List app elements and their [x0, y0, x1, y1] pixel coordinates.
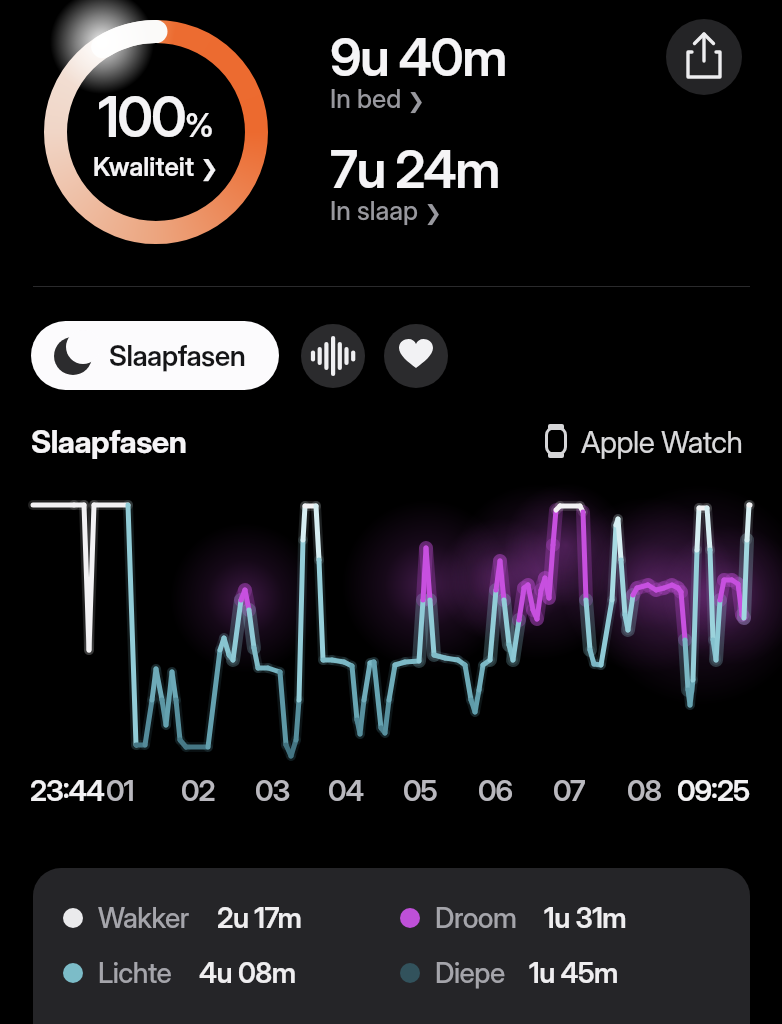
staticText: 05	[403, 773, 437, 808]
staticText: 1u 45m	[529, 956, 618, 990]
staticText: 1u 31m	[544, 901, 627, 935]
staticText: Droom	[435, 901, 517, 935]
staticText: In slaap ❯	[330, 195, 442, 226]
staticText: 04	[328, 773, 364, 808]
staticText: 03	[255, 773, 290, 808]
staticText: Lichte	[98, 956, 172, 990]
staticText: 01	[106, 773, 134, 808]
staticText: In bed ❯	[330, 83, 425, 114]
staticText: 23:44	[30, 773, 104, 808]
staticText: Diepe	[435, 956, 505, 990]
staticText: 4u 08m	[199, 956, 296, 990]
staticText: 02	[181, 773, 215, 808]
staticText: 07	[553, 773, 585, 808]
staticText: 100%	[98, 83, 214, 151]
staticText: Apple Watch	[581, 424, 743, 460]
staticText: 06	[478, 773, 513, 808]
staticText: Wakker	[98, 901, 189, 935]
staticText: Kwaliteit ❯	[93, 151, 219, 182]
staticText: 2u 17m	[217, 901, 302, 935]
staticText: 9u 40m	[330, 26, 506, 89]
staticText: 09:25	[677, 773, 750, 808]
staticText: Slaapfasen	[109, 339, 246, 373]
staticText: 7u 24m	[330, 138, 499, 201]
staticText: Slaapfasen	[31, 423, 187, 461]
staticText: 08	[627, 773, 661, 808]
